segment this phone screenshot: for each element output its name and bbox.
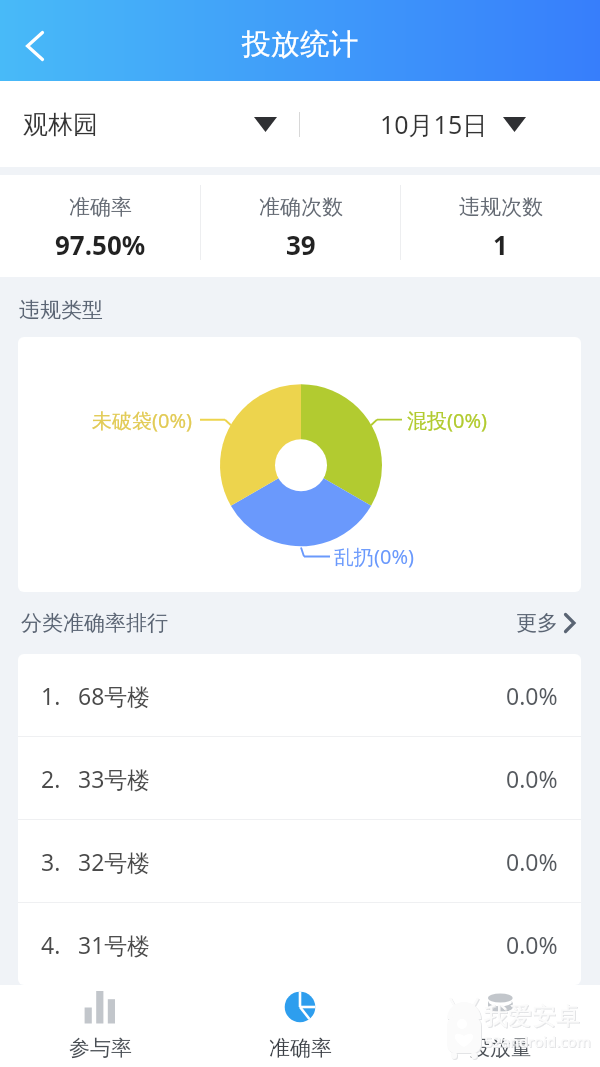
button[interactable]: 1. [18,654,581,736]
staticText: 1. [41,680,61,711]
staticText: 97.50% [55,227,146,262]
staticText: 0.0% [506,680,558,711]
staticText: 准确次数 [259,194,343,220]
staticText: 违规次数 [459,194,543,220]
staticText: 更多 [516,610,558,636]
staticText: 39 [286,227,316,262]
staticText: 我爱安卓 [484,1001,580,1031]
staticText: 我爱安卓 [485,1002,581,1032]
button[interactable]: 投放量 [400,985,600,1067]
staticText: 2. [41,763,61,794]
staticText: 4. [41,929,61,960]
button[interactable]: 10月15日 [300,81,600,167]
button[interactable]: Back [11,22,59,70]
staticText: 观林园 [23,109,98,140]
staticText: 未破袋(0%) [92,407,193,434]
staticText: 52android.com [485,1032,592,1052]
staticText: 31号楼 [78,929,151,960]
staticText: 乱扔(0%) [334,543,415,570]
staticText: 投放统计 [242,26,358,63]
button[interactable]: 参与率 [0,985,200,1067]
button[interactable]: 准确率 [0,175,200,277]
button[interactable]: 准确次数 [201,175,400,277]
button[interactable]: 准确率 [200,985,400,1067]
staticText: 0.0% [506,763,558,794]
button[interactable]: 3. [18,820,581,902]
staticText: 违规类型 [19,297,103,323]
button[interactable]: 更多 [516,610,576,636]
staticText: 准确率 [69,194,132,220]
staticText: 68号楼 [78,680,151,711]
staticText: 参与率 [69,1035,132,1061]
staticText: 分类准确率排行 [21,610,168,636]
button[interactable]: 违规次数 [401,175,600,277]
staticText: 0.0% [506,929,558,960]
staticText: 52android.com [484,1031,591,1051]
staticText: 32号楼 [78,846,151,877]
staticText: 准确率 [269,1035,332,1061]
staticText: 33号楼 [78,763,151,794]
staticText: 10月15日 [380,107,488,141]
staticText: 混投(0%) [407,407,488,434]
staticText: 0.0% [506,846,558,877]
button[interactable]: 2. [18,737,581,819]
button[interactable]: 4. [18,903,581,985]
button[interactable]: 观林园 [0,81,299,167]
staticText: 3. [41,846,61,877]
staticText: 1 [493,227,508,262]
staticText: 投放量 [469,1035,532,1061]
